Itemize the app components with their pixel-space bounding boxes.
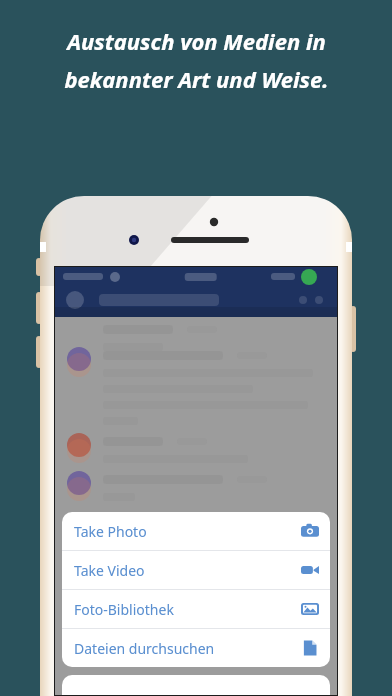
staticText: Austausch von Medien in [67,26,326,56]
staticText: Foto-Bibliothek [74,600,174,619]
staticText: Dateien durchsuchen [74,639,215,658]
staticText: bekannter Art und Weise. [64,64,329,94]
button[interactable]: Take Photo [62,512,330,550]
staticText: Take Video [74,561,145,580]
staticText: Take Photo [74,522,147,541]
button[interactable]: Dateien durchsuchen [62,629,330,667]
button[interactable] [62,675,330,695]
button[interactable]: Take Video [62,551,330,589]
button[interactable]: Foto-Bibliothek [62,590,330,628]
